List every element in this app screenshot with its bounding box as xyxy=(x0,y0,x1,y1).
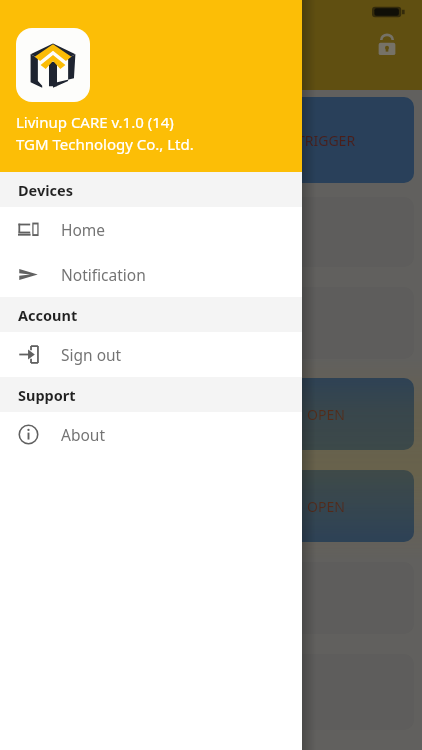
staticText: Devices xyxy=(18,180,74,200)
button[interactable]: Notification xyxy=(0,252,302,297)
staticText: About xyxy=(61,424,105,445)
button[interactable] xyxy=(238,197,414,267)
button[interactable]: OPEN xyxy=(238,470,414,542)
button[interactable] xyxy=(238,287,414,359)
button[interactable]: Sign out xyxy=(0,332,302,377)
staticText: Home xyxy=(61,219,106,240)
staticText: Support xyxy=(18,385,76,405)
button[interactable]: TRIGGER xyxy=(238,97,414,183)
button[interactable]: OPEN xyxy=(238,378,414,450)
button[interactable] xyxy=(238,562,414,634)
staticText: Sign out xyxy=(61,344,122,365)
button[interactable]: Home xyxy=(0,207,302,252)
button[interactable]: Lock xyxy=(368,26,406,64)
staticText: TRIGGER xyxy=(297,131,356,150)
staticText: Account xyxy=(18,305,78,325)
staticText: TGM Technology Co., Ltd. xyxy=(16,134,194,154)
staticText: Notification xyxy=(61,264,146,285)
staticText: OPEN xyxy=(307,405,345,424)
button[interactable]: About xyxy=(0,412,302,457)
staticText: Livinup CARE v.1.0 (14) xyxy=(16,112,174,132)
button[interactable] xyxy=(238,654,414,730)
staticText: OPEN xyxy=(307,497,345,516)
